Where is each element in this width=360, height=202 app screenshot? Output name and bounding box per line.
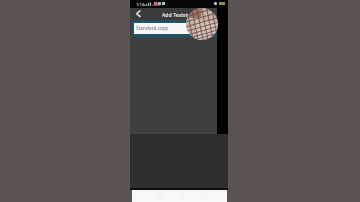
staticText: Standard.copy (136, 25, 169, 32)
button[interactable]: Standard.copy (134, 23, 215, 34)
staticText: Add Textstyle (162, 11, 195, 18)
staticText: 1:14 (136, 2, 144, 7)
button[interactable]: Back (132, 8, 144, 20)
